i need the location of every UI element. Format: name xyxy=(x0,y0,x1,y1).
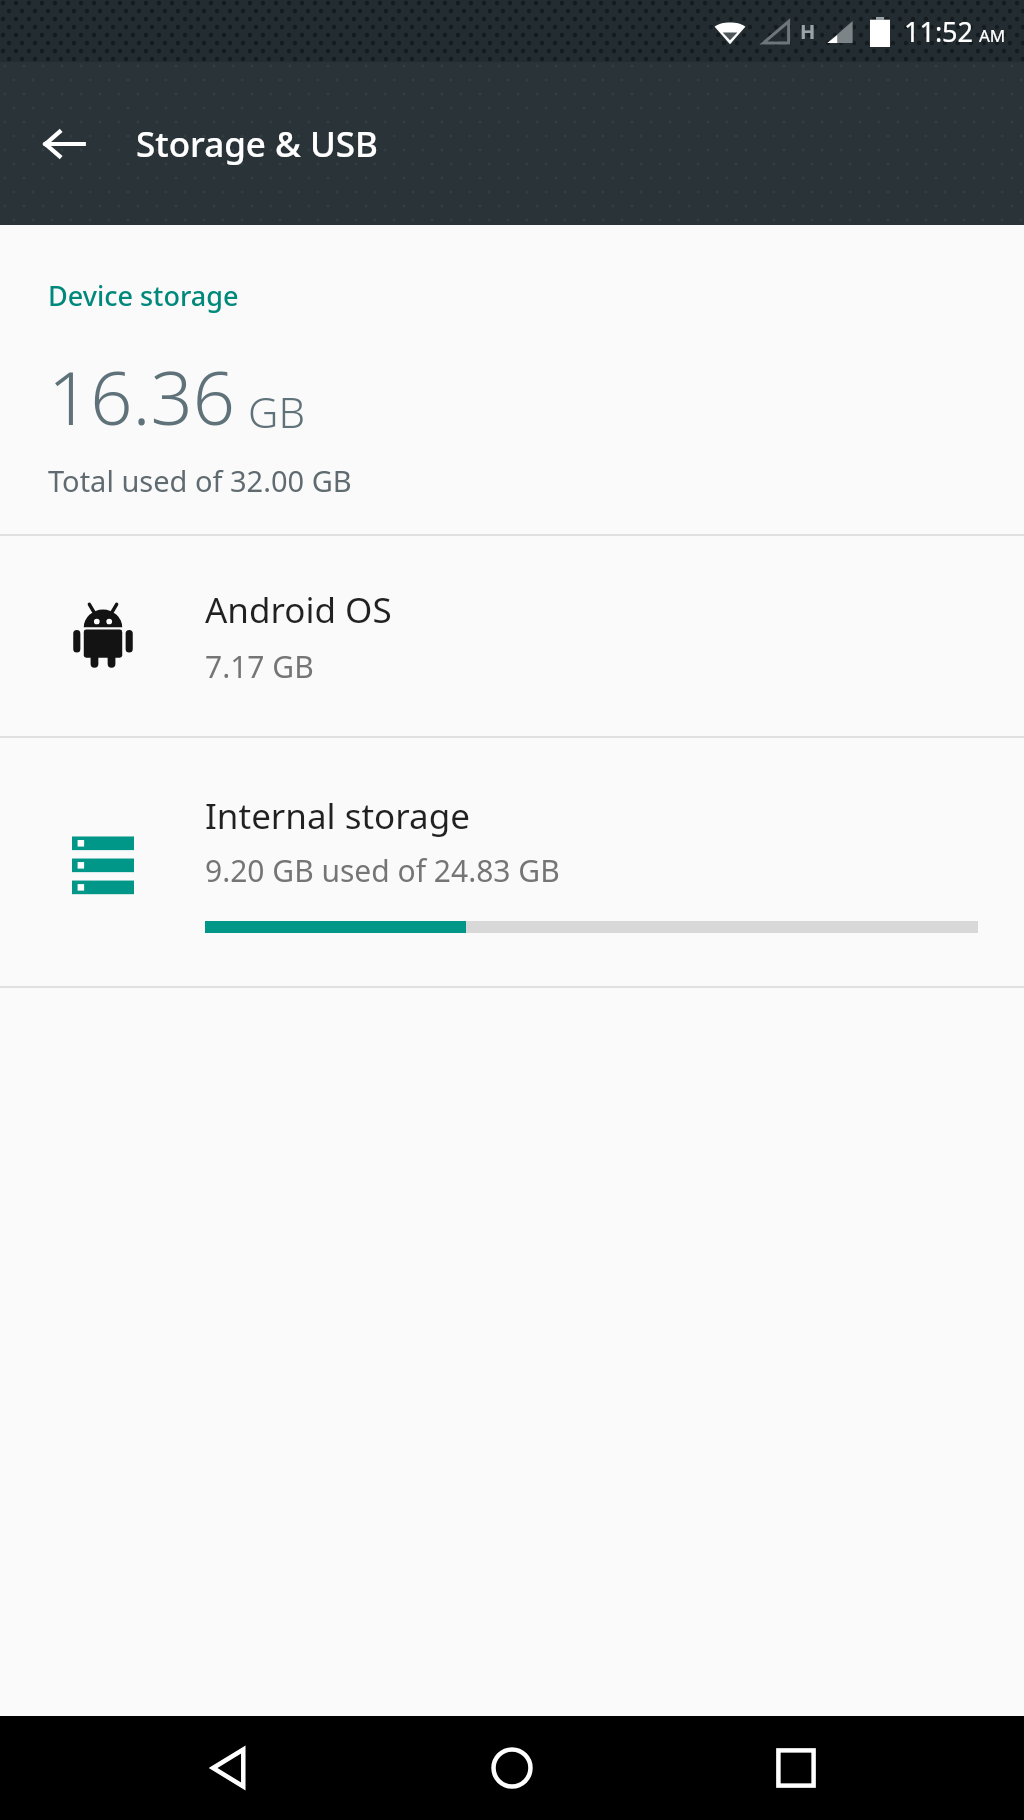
staticText: GB xyxy=(248,383,305,440)
staticText: Android OS xyxy=(205,586,392,634)
staticText: Device storage xyxy=(48,277,239,314)
button[interactable]: Home xyxy=(457,1716,567,1820)
staticText: Total used of 32.00 GB xyxy=(48,461,352,500)
staticText: 7.17 GB xyxy=(205,646,314,687)
staticText: H xyxy=(800,18,816,45)
staticText: 9.20 GB used of 24.83 GB xyxy=(205,850,560,891)
staticText: 16.36 xyxy=(48,346,236,447)
button[interactable]: Internal storage xyxy=(0,738,1024,986)
staticText: Storage & USB xyxy=(136,120,378,168)
button[interactable]: Android OS xyxy=(0,536,1024,736)
staticText: 11:52 xyxy=(904,13,974,50)
staticText: AM xyxy=(979,24,1006,47)
staticText: Internal storage xyxy=(205,792,470,840)
button[interactable]: Back xyxy=(174,1716,284,1820)
button[interactable]: Recents xyxy=(741,1716,851,1820)
button[interactable]: Back xyxy=(26,106,102,182)
